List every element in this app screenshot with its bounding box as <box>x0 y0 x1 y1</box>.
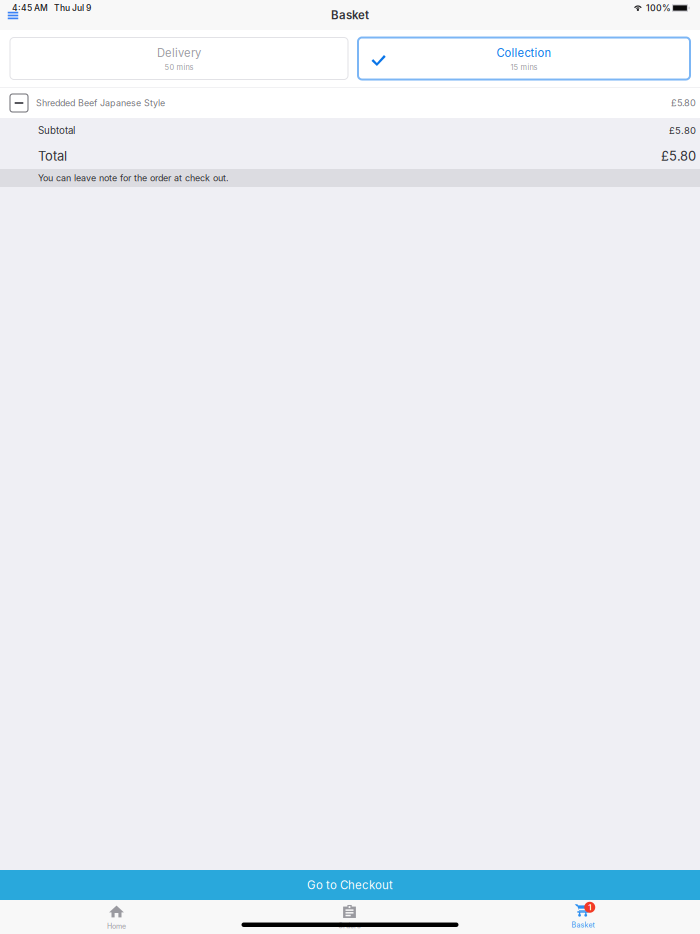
staticText: 1 <box>588 902 591 912</box>
staticText: Thu Jul 9 <box>54 3 91 13</box>
button[interactable]: 1 <box>466 900 700 934</box>
staticText: Shredded Beef Japanese Style <box>36 98 165 108</box>
button[interactable]: Remove item <box>10 94 28 112</box>
button[interactable]: Orders <box>233 900 466 934</box>
staticText: 4:45 AM <box>12 3 48 13</box>
staticText: £5.80 <box>661 148 696 164</box>
staticText: £5.80 <box>669 125 696 136</box>
button[interactable]: Delivery <box>10 37 348 79</box>
staticText: You can leave note for the order at chec… <box>38 173 229 183</box>
button[interactable]: Collection <box>358 37 690 79</box>
staticText: Orders <box>338 921 361 930</box>
staticText: Home <box>107 922 126 930</box>
staticText: Collection <box>496 46 551 60</box>
button[interactable]: Go to Checkout <box>0 870 700 900</box>
staticText: Basket <box>571 921 594 929</box>
staticText: Total <box>38 148 67 164</box>
staticText: £5.80 <box>671 97 696 108</box>
staticText: 15 mins <box>510 63 537 72</box>
staticText: 50 mins <box>164 63 193 72</box>
staticText: Delivery <box>157 46 201 60</box>
staticText: 100% <box>646 3 671 13</box>
staticText: Go to Checkout <box>307 878 393 892</box>
staticText: Basket <box>331 8 369 22</box>
staticText: Subtotal <box>38 125 75 136</box>
button[interactable]: Menu <box>5 9 21 21</box>
button[interactable]: Home <box>0 900 233 934</box>
